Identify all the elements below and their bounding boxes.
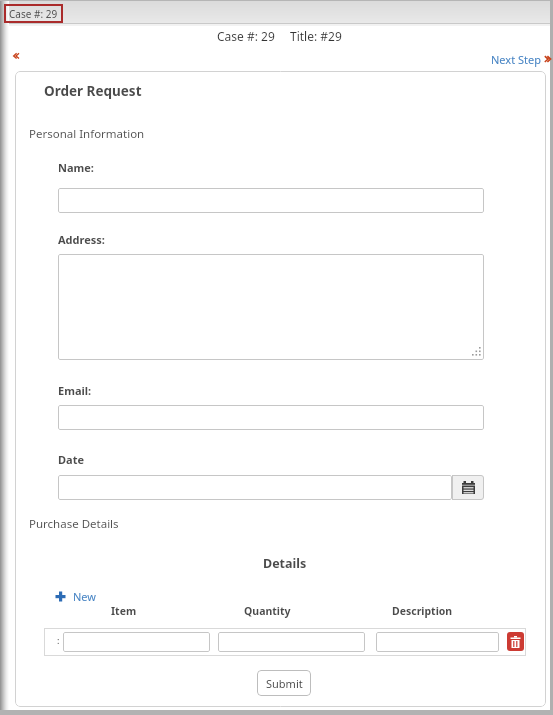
staticText: Name: <box>58 160 94 175</box>
staticText: Next Step <box>491 52 541 67</box>
button[interactable]: Submit <box>257 670 311 696</box>
staticText: New <box>73 589 96 604</box>
staticText: Submit <box>266 676 303 691</box>
button[interactable] <box>376 632 499 652</box>
staticText: Item <box>111 604 137 618</box>
button[interactable]: New <box>55 589 96 604</box>
staticText: Email: <box>58 383 92 398</box>
button[interactable] <box>452 475 484 500</box>
button[interactable] <box>58 405 484 430</box>
button[interactable] <box>58 475 452 500</box>
staticText: : <box>57 634 60 646</box>
staticText: Personal Information <box>29 126 145 142</box>
staticText: Title: #29 <box>290 28 342 44</box>
button[interactable] <box>218 632 365 652</box>
staticText: Date <box>58 452 84 467</box>
staticText: Description <box>392 604 453 618</box>
button[interactable] <box>507 632 524 651</box>
button[interactable] <box>11 51 22 62</box>
button[interactable] <box>58 188 484 213</box>
staticText: Order Request <box>44 82 142 100</box>
button[interactable] <box>58 254 484 360</box>
button[interactable]: Next Step <box>491 52 551 67</box>
staticText: Quantity <box>244 604 291 618</box>
staticText: Address: <box>58 232 105 247</box>
staticText: Details <box>263 555 307 572</box>
button[interactable] <box>63 632 210 652</box>
staticText: Case #: 29 <box>217 28 275 44</box>
staticText: Case #: 29 <box>9 7 58 21</box>
staticText: Purchase Details <box>29 516 119 532</box>
